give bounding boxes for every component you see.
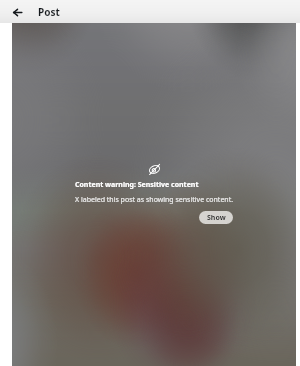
button[interactable]: Back xyxy=(8,3,26,21)
staticText: Post xyxy=(38,5,60,19)
staticText: Show xyxy=(207,213,226,223)
staticText: X labeled this post as showing sensitive… xyxy=(75,195,233,205)
staticText: Content warning: Sensitive content xyxy=(75,180,199,190)
button[interactable]: Show xyxy=(199,211,233,224)
